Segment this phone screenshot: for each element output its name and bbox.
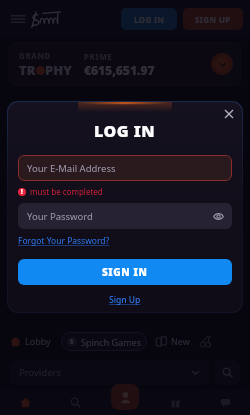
button[interactable]: Close [221, 106, 237, 122]
staticText: PRIME [84, 51, 113, 62]
staticText: Your E-Mail Address [27, 162, 116, 175]
button[interactable]: SIGN UP [183, 8, 243, 30]
staticText: Spinch Games [81, 336, 141, 348]
button[interactable]: S [61, 332, 147, 351]
staticText: TR [19, 61, 36, 79]
button[interactable]: Your E-Mail Address [18, 155, 232, 181]
button[interactable]: Expand jackpots [211, 53, 233, 75]
button[interactable]: Home [0, 389, 50, 415]
staticText: ! [21, 188, 23, 196]
button[interactable]: LOG IN [121, 8, 177, 30]
button[interactable]: Chat [200, 389, 250, 415]
button[interactable]: Slots [199, 335, 212, 348]
staticText: must be completed [30, 186, 103, 197]
staticText: SIGN IN [102, 265, 148, 279]
staticText: New [171, 335, 190, 347]
staticText: Lobby [25, 335, 51, 347]
button[interactable]: Forgot Your Password? [18, 235, 110, 247]
staticText: SIGN UP [195, 14, 231, 25]
button[interactable]: Menu [8, 9, 28, 29]
button[interactable]: Show password [211, 209, 225, 223]
button[interactable]: GRAND [9, 42, 241, 86]
button[interactable]: Search [215, 360, 240, 385]
button[interactable]: New [156, 335, 190, 347]
button[interactable]: SIGN IN [18, 259, 232, 285]
staticText: Providers [19, 366, 61, 379]
staticText: Your Password [27, 210, 93, 223]
staticText: S [70, 338, 74, 346]
staticText: €615,651.97 [84, 62, 155, 78]
button[interactable]: Account [111, 384, 139, 410]
staticText: GRAND [19, 50, 51, 61]
staticText: PHY [45, 61, 72, 79]
button[interactable]: Your Password [18, 203, 232, 229]
button[interactable]: Lobby [10, 335, 51, 347]
staticText: LOG IN [94, 120, 156, 142]
staticText: LOG IN [134, 14, 165, 25]
button[interactable]: Sign Up [109, 294, 141, 306]
button[interactable]: Spinch home [30, 9, 72, 29]
